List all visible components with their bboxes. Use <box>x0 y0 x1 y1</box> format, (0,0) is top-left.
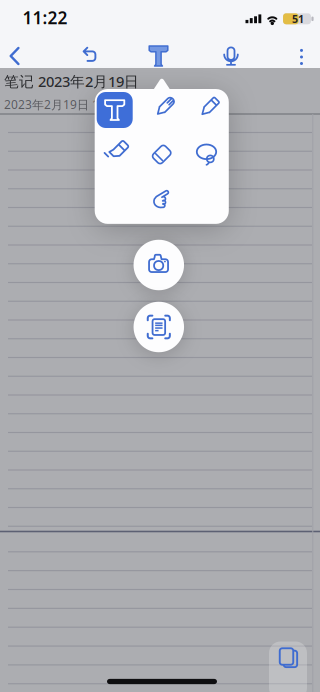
button[interactable]: Dictation <box>209 34 253 78</box>
button[interactable]: Lasso select <box>186 134 226 174</box>
staticText: 2023年2月19日 11:22 | 378字 <box>4 96 169 112</box>
button[interactable]: Take photo <box>134 240 184 290</box>
staticText: 51 <box>292 12 304 26</box>
button[interactable]: Pen <box>142 90 182 130</box>
button[interactable]: Eraser <box>142 134 182 174</box>
button[interactable]: Text tool <box>95 90 135 130</box>
button[interactable]: Pages <box>269 641 307 692</box>
staticText: 笔记 2023年2月19日 <box>4 71 139 91</box>
button[interactable]: Undo <box>67 34 111 78</box>
button[interactable]: More <box>279 35 320 79</box>
button[interactable]: Highlighter <box>95 134 135 174</box>
button[interactable]: Scan document <box>134 302 184 352</box>
button[interactable]: Text tool <box>135 34 179 78</box>
staticText: 11:22 <box>22 6 67 29</box>
button[interactable]: Gesture mode <box>142 179 182 219</box>
button[interactable]: Pencil <box>186 90 226 130</box>
button[interactable]: Back <box>0 34 36 78</box>
